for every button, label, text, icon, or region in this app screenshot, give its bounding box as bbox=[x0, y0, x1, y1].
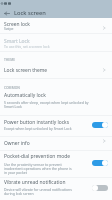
button[interactable] bbox=[0, 177, 112, 200]
staticText: To use this, set a screen lock bbox=[4, 44, 50, 49]
staticText: 5 seconds after sleep, except when kept … bbox=[4, 100, 89, 109]
staticText: THEME bbox=[4, 57, 16, 61]
staticText: Screen lock bbox=[4, 21, 30, 28]
button[interactable] bbox=[0, 136, 112, 150]
other: Off bbox=[92, 183, 108, 192]
staticText: Vibrate unread notification bbox=[4, 179, 66, 186]
staticText: Automatically lock bbox=[4, 92, 46, 99]
staticText: Lock screen bbox=[14, 9, 46, 17]
staticText: Device will vibrate for unread notificat… bbox=[4, 187, 72, 196]
staticText: Owner info bbox=[4, 140, 30, 147]
staticText: Swipe bbox=[4, 26, 14, 31]
button[interactable] bbox=[0, 115, 112, 136]
button[interactable] bbox=[0, 150, 112, 177]
other: Screen lock bbox=[100, 24, 108, 32]
button[interactable] bbox=[0, 33, 112, 51]
button[interactable] bbox=[0, 78, 112, 115]
button[interactable]: Back bbox=[0, 6, 14, 18]
staticText: Use the proximity sensor to prevent inad… bbox=[4, 162, 72, 175]
other: On bbox=[92, 120, 108, 129]
button[interactable] bbox=[0, 51, 112, 78]
button[interactable] bbox=[0, 18, 112, 33]
staticText: COMMON bbox=[4, 85, 20, 89]
staticText: Smart Lock bbox=[4, 38, 30, 45]
staticText: Lock screen theme bbox=[4, 67, 48, 74]
staticText: Pocket-dial prevention mode bbox=[4, 153, 70, 160]
other: Owner info bbox=[100, 137, 108, 145]
staticText: Power button instantly locks bbox=[4, 119, 70, 126]
other: On bbox=[92, 158, 108, 167]
staticText: Except when kept unlocked by Smart Lock bbox=[4, 126, 72, 131]
other: Lock screen theme bbox=[100, 66, 108, 74]
